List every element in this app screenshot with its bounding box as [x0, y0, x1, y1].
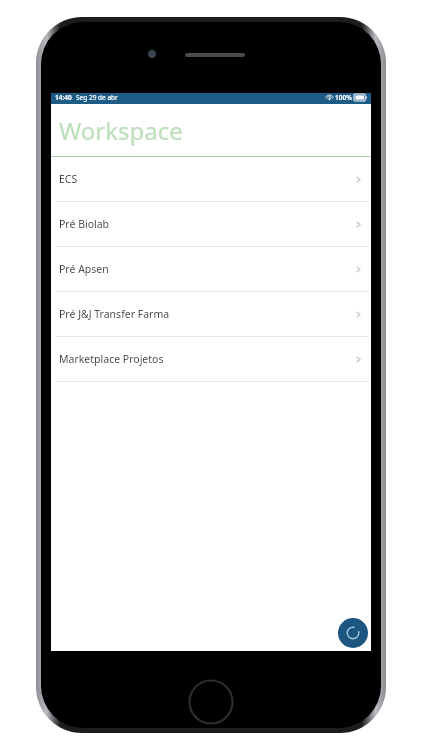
button[interactable]: ECS [51, 157, 371, 201]
staticText: Pré J&J Transfer Farma [59, 307, 170, 321]
staticText: Pré Biolab [59, 217, 110, 231]
staticText: Workspace [59, 114, 183, 147]
button[interactable]: Pré Apsen [51, 247, 371, 291]
button[interactable]: Pré Biolab [51, 202, 371, 246]
staticText: Pré Apsen [59, 262, 109, 276]
staticText: ECS [59, 172, 78, 186]
staticText: 100% [335, 93, 352, 102]
button[interactable]: Pré J&J Transfer Farma [51, 292, 371, 336]
button[interactable]: Sincronizar [338, 618, 368, 648]
button[interactable]: Marketplace Projetos [51, 337, 371, 381]
staticText: 14:40 [55, 93, 72, 102]
staticText: Seg 29 de abr [76, 93, 118, 102]
staticText: Marketplace Projetos [59, 352, 164, 366]
